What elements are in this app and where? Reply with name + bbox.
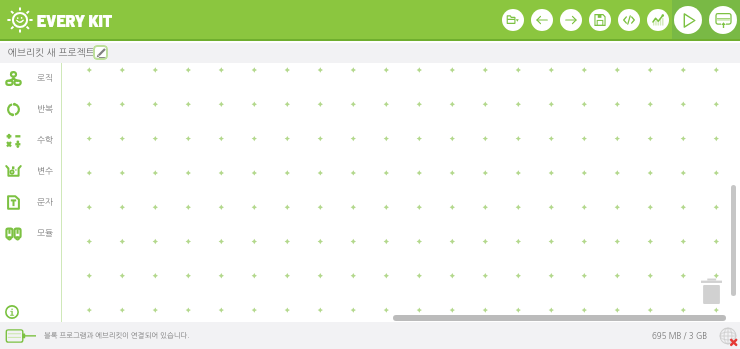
button[interactable]: 변수 [0,156,62,187]
staticText: 문자 [37,198,54,207]
button[interactable]: 반복 [0,94,62,125]
staticText: EVERY KIT [37,11,113,30]
button[interactable]: 로직 [0,63,62,94]
button[interactable]: Delete blocks [701,278,722,304]
button[interactable]: Monitor chart [647,9,669,31]
button[interactable]: Save [589,9,611,31]
staticText: 수학 [37,136,54,145]
button[interactable]: Run [674,6,702,34]
button[interactable]: 모듈 [0,218,62,249]
staticText: 블록 프로그램과 에브리킷이 연결되어 있습니다. [44,332,190,339]
button[interactable]: Upload to device [709,6,737,34]
button[interactable]: Open project [502,9,524,31]
button[interactable]: Redo [560,9,582,31]
button[interactable]: Show code [618,9,640,31]
button[interactable]: Undo [531,9,553,31]
staticText: 반복 [37,105,54,114]
button[interactable]: 문자 [0,187,62,218]
staticText: 에브리킷 새 프로젝트 [8,48,95,58]
button[interactable]: Information [5,305,19,319]
button[interactable]: Network disconnected [719,327,737,345]
staticText: 로직 [37,74,54,83]
button[interactable]: Rename project [93,45,108,60]
button[interactable]: 수학 [0,125,62,156]
staticText: 변수 [37,167,54,176]
staticText: 모듈 [37,229,54,238]
staticText: 695 MB / 3 GB [652,332,708,340]
